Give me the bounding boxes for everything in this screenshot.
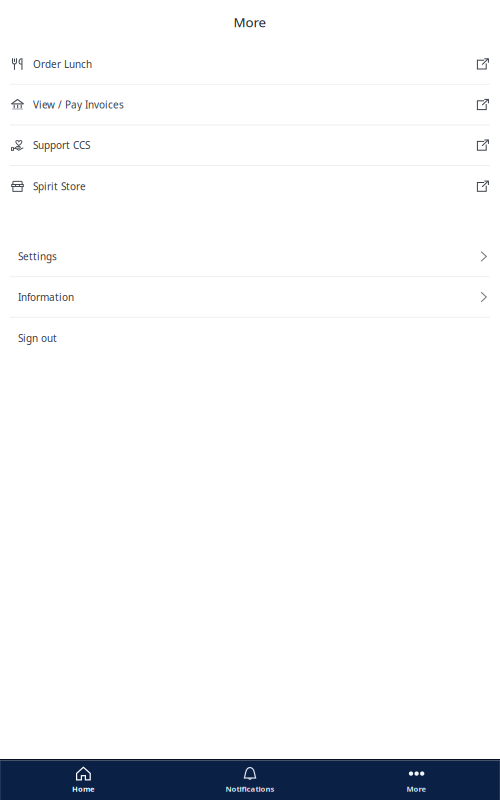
button[interactable]: Information (0, 277, 500, 318)
staticText: Notifications (225, 784, 274, 794)
button[interactable]: Home (72, 760, 95, 800)
staticText: Sign out (18, 331, 57, 345)
button[interactable]: View / Pay Invoices (0, 85, 500, 125)
staticText: Information (18, 290, 74, 304)
staticText: Support CCS (33, 138, 90, 152)
staticText: View / Pay Invoices (33, 98, 124, 111)
staticText: Order Lunch (33, 57, 92, 71)
button[interactable]: Support CCS (0, 125, 500, 166)
button[interactable]: More (407, 760, 427, 800)
button[interactable]: Sign out (0, 318, 500, 358)
button[interactable]: Notifications (225, 760, 274, 800)
staticText: Settings (18, 250, 57, 263)
staticText: Home (72, 784, 95, 794)
staticText: More (407, 784, 427, 794)
button[interactable]: Settings (0, 237, 500, 277)
button[interactable]: Order Lunch (0, 44, 500, 85)
staticText: Spirit Store (33, 179, 86, 193)
button[interactable]: Spirit Store (0, 166, 500, 207)
staticText: More (233, 13, 266, 31)
